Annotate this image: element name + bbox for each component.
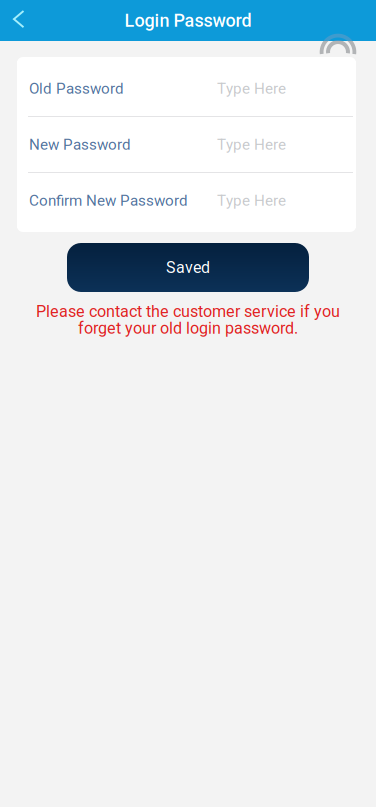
button[interactable]: Back xyxy=(0,0,38,41)
staticText: Confirm New Password xyxy=(29,192,188,209)
staticText: Saved xyxy=(166,258,210,277)
staticText: Please contact the customer service if y… xyxy=(36,302,340,321)
button[interactable]: Saved xyxy=(67,243,309,292)
staticText: forget your old login password. xyxy=(78,319,298,338)
staticText: New Password xyxy=(29,136,131,153)
staticText: Type Here xyxy=(217,80,286,97)
staticText: Type Here xyxy=(217,192,286,209)
staticText: Type Here xyxy=(217,136,286,153)
staticText: Old Password xyxy=(29,80,124,97)
staticText: Login Password xyxy=(124,10,251,31)
